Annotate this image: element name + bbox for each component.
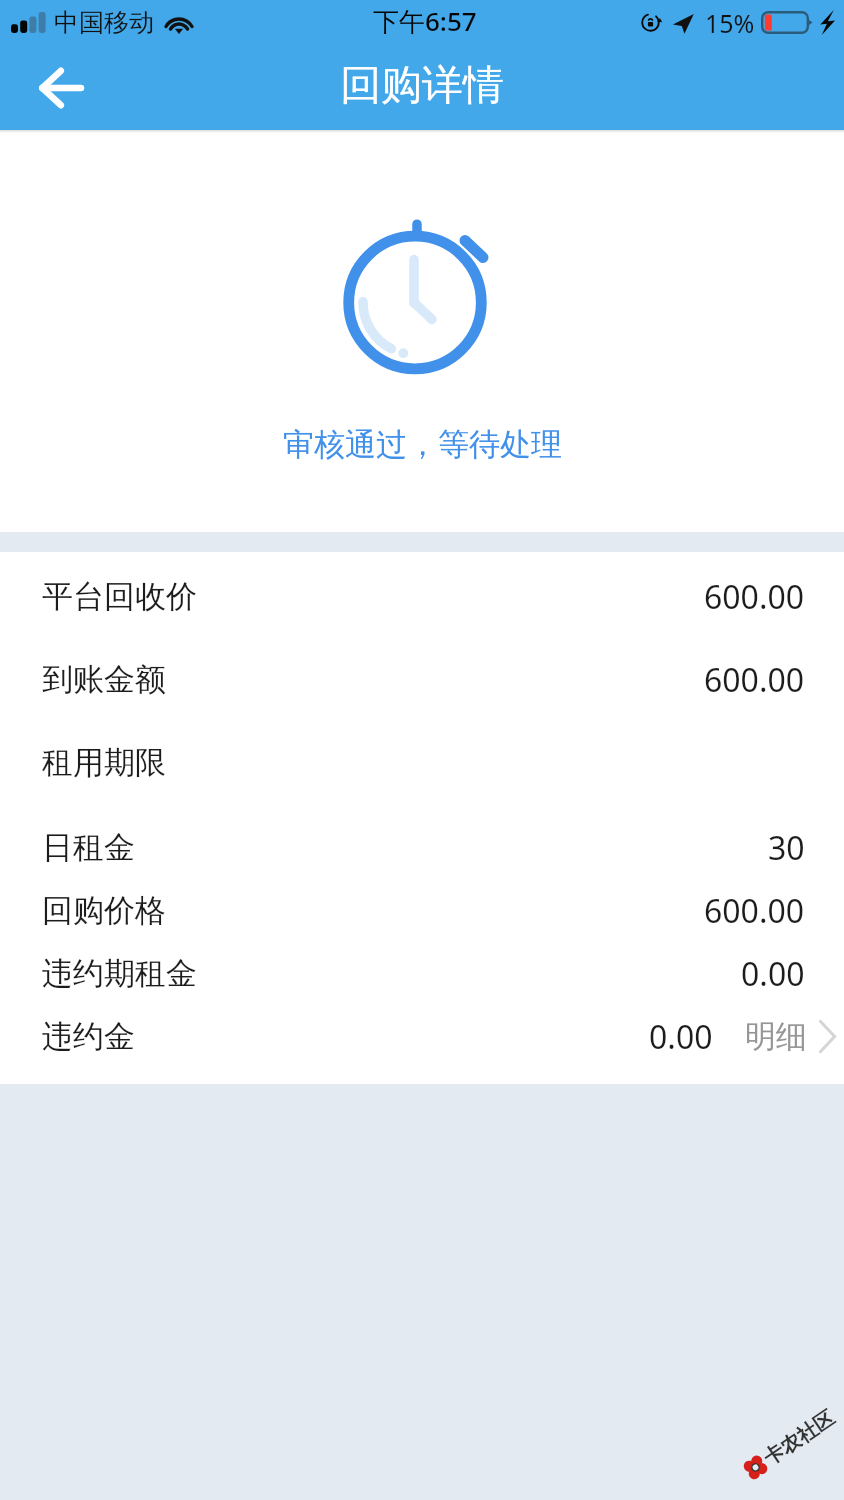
button[interactable]: 平台回收价 (42, 555, 805, 638)
staticText: 到账金额 (42, 660, 166, 699)
staticText: 回购详情 (340, 60, 504, 112)
button[interactable]: 租用期限 (42, 721, 805, 804)
button[interactable]: 违约金 (42, 1005, 844, 1068)
staticText: 30 (768, 826, 805, 870)
staticText: 600.00 (704, 658, 805, 702)
button[interactable]: Back (26, 54, 94, 122)
staticText: 明细 (745, 1017, 807, 1056)
button[interactable]: 明细 (745, 1005, 836, 1068)
staticText: 0.00 (649, 1015, 713, 1059)
staticText: 违约金 (42, 1017, 135, 1056)
staticText: 平台回收价 (42, 577, 197, 616)
staticText: 租用期限 (42, 743, 166, 782)
staticText: 违约期租金 (42, 954, 197, 993)
button[interactable]: 违约期租金 (42, 942, 805, 1005)
button[interactable]: 到账金额 (42, 638, 805, 721)
staticText: 中国移动 (54, 7, 154, 38)
staticText: 15% (705, 6, 755, 40)
staticText: 下午6:57 (373, 3, 477, 39)
staticText: 0.00 (741, 952, 805, 996)
staticText: 600.00 (704, 889, 805, 933)
button[interactable]: 日租金 (42, 816, 805, 879)
button[interactable]: 回购价格 (42, 879, 805, 942)
staticText: 回购价格 (42, 891, 166, 930)
staticText: 600.00 (704, 575, 805, 619)
staticText: 审核通过，等待处理 (283, 425, 562, 464)
staticText: 卡农社区 (759, 1405, 839, 1471)
staticText: 日租金 (42, 828, 135, 867)
